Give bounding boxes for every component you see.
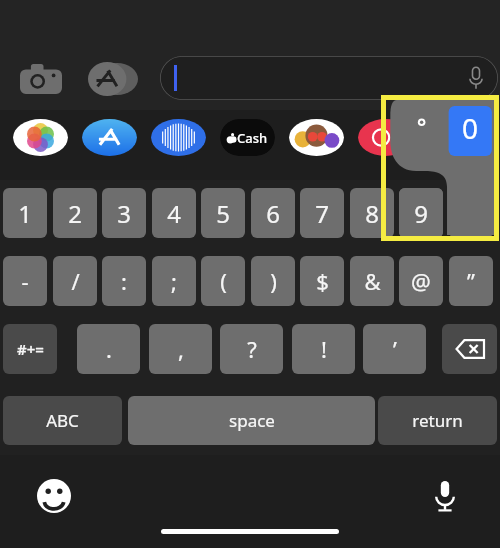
button[interactable]: 7 bbox=[300, 188, 344, 238]
staticText: $ bbox=[316, 266, 329, 296]
button[interactable]: @ bbox=[399, 256, 443, 306]
button[interactable]: 6 bbox=[251, 188, 295, 238]
button[interactable]: 9 bbox=[399, 188, 443, 238]
button[interactable]: $ bbox=[300, 256, 344, 306]
staticText: ’ bbox=[393, 334, 397, 364]
staticText: 5 bbox=[216, 197, 230, 230]
button[interactable]: 2 bbox=[53, 188, 97, 238]
staticText: . bbox=[106, 334, 112, 364]
button[interactable]: App 2 bbox=[151, 119, 206, 156]
staticText: ABC bbox=[46, 409, 79, 432]
button[interactable]: Emoji bbox=[36, 478, 72, 514]
button[interactable]: space bbox=[128, 396, 375, 445]
other: Dictate bbox=[468, 66, 484, 90]
staticText: ! bbox=[321, 334, 327, 364]
button[interactable]: App 1 bbox=[82, 119, 137, 156]
button[interactable]: return bbox=[378, 396, 497, 445]
button[interactable]: 3 bbox=[102, 188, 146, 238]
button[interactable]: ; bbox=[152, 256, 196, 306]
button[interactable]: - bbox=[3, 256, 47, 306]
staticText: 8 bbox=[365, 197, 379, 230]
staticText: 9 bbox=[414, 197, 428, 230]
button[interactable]: ABC bbox=[3, 396, 122, 445]
button[interactable]: 0 bbox=[449, 188, 493, 238]
button[interactable]: #+= bbox=[3, 324, 57, 374]
staticText: 6 bbox=[266, 197, 280, 230]
button[interactable]: 4 bbox=[152, 188, 196, 238]
staticText: ; bbox=[171, 266, 177, 296]
button[interactable]: ” bbox=[449, 256, 493, 306]
staticText: , bbox=[178, 334, 184, 364]
staticText: & bbox=[364, 266, 381, 296]
staticText: #+= bbox=[17, 339, 44, 359]
button[interactable]: 5 bbox=[201, 188, 245, 238]
staticText: ( bbox=[220, 266, 227, 296]
button[interactable]: App 4 bbox=[289, 119, 344, 156]
button[interactable]: ! bbox=[292, 324, 355, 374]
staticText: 2 bbox=[68, 197, 82, 230]
staticText: space bbox=[229, 409, 275, 432]
staticText: ” bbox=[467, 266, 475, 296]
button[interactable]: App 5 bbox=[358, 119, 413, 156]
staticText: - bbox=[21, 266, 29, 296]
staticText: return bbox=[412, 409, 463, 432]
button[interactable]: ( bbox=[201, 256, 245, 306]
staticText: ? bbox=[247, 334, 257, 364]
button[interactable]: 1 bbox=[3, 188, 47, 238]
staticText: 7 bbox=[315, 197, 329, 230]
button[interactable]: . bbox=[77, 324, 140, 374]
button[interactable]: Camera bbox=[18, 62, 64, 96]
button[interactable]: Voice input bbox=[427, 478, 463, 514]
staticText: 1 bbox=[18, 197, 32, 230]
button[interactable]: ’ bbox=[363, 324, 426, 374]
button[interactable]: & bbox=[350, 256, 394, 306]
staticText: 4 bbox=[167, 197, 181, 230]
button[interactable]: ) bbox=[251, 256, 295, 306]
staticText: 3 bbox=[117, 197, 131, 230]
staticText: ) bbox=[270, 266, 277, 296]
button[interactable]: Dictate bbox=[160, 56, 498, 100]
staticText: Cash bbox=[237, 129, 268, 147]
button[interactable]: ? bbox=[220, 324, 283, 374]
button[interactable]: / bbox=[53, 256, 97, 306]
button[interactable]: Apps bbox=[88, 62, 136, 96]
button[interactable]: App 0 bbox=[13, 119, 68, 156]
staticText: 0 bbox=[454, 109, 486, 147]
button[interactable]: 8 bbox=[350, 188, 394, 238]
staticText: : bbox=[121, 266, 127, 296]
staticText: 9 bbox=[414, 197, 428, 230]
staticText: / bbox=[71, 266, 80, 296]
button[interactable]: : bbox=[102, 256, 146, 306]
staticText: @ bbox=[411, 266, 431, 296]
button[interactable]: App 3 bbox=[220, 119, 275, 156]
button[interactable]: Backspace bbox=[442, 324, 497, 374]
button[interactable]: , bbox=[149, 324, 212, 374]
button[interactable]: 9 bbox=[399, 188, 443, 238]
